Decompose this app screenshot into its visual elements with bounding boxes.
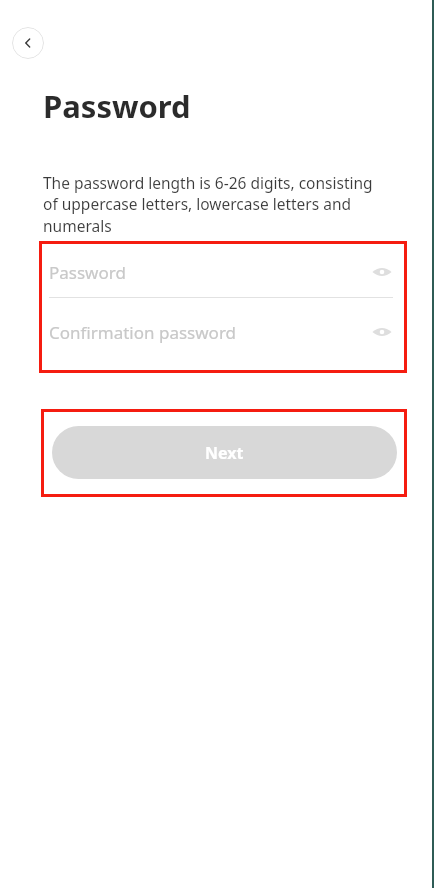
button[interactable]: Confirmation password [39,307,407,357]
button[interactable]: Password [39,247,407,297]
staticText: Confirmation password [49,321,365,344]
staticText: The password length is 6-26 digits, cons… [43,172,379,237]
button[interactable]: Show password [365,315,399,349]
staticText: Password [49,261,365,284]
button[interactable]: Back [12,27,44,59]
button[interactable]: Next [52,426,397,479]
button[interactable]: Show password [365,255,399,289]
staticText: Next [205,442,244,464]
staticText: Password [43,85,191,127]
